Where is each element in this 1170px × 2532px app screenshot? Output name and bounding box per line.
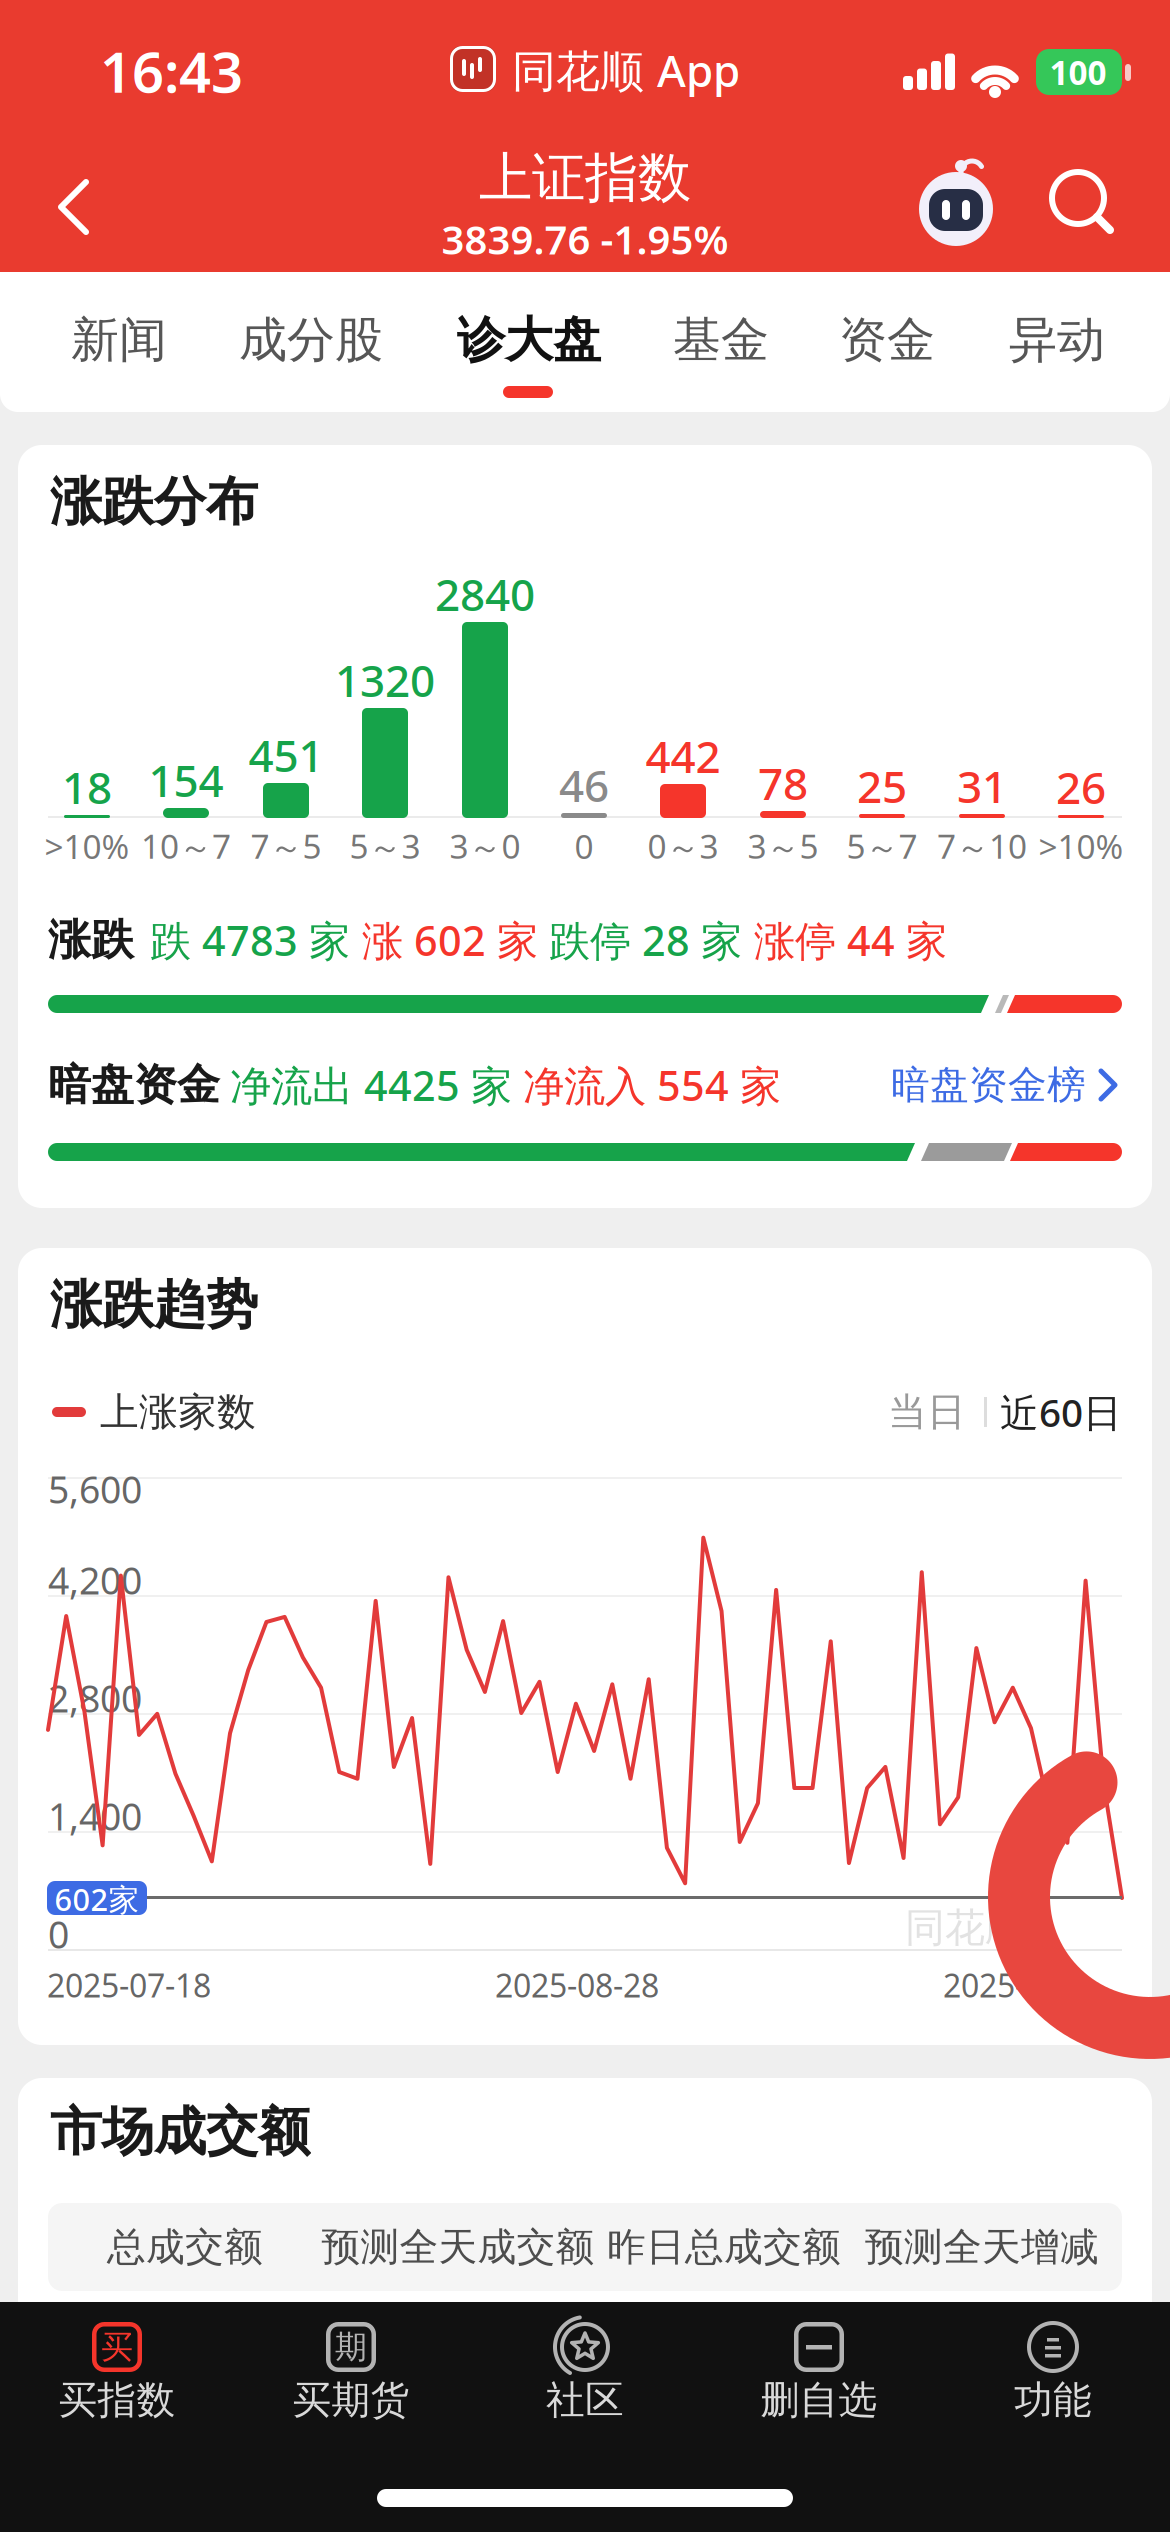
button[interactable]: 买 [0, 0, 200, 64]
staticText: 2025-08-28 [495, 1964, 659, 2006]
staticText: 删自选 [760, 2376, 877, 2424]
staticText: 442 [645, 727, 720, 785]
staticText: 暗盘资金榜 [891, 1061, 1086, 1109]
staticText: 涨 602 家 [362, 913, 538, 967]
staticText: 3～0 [449, 824, 520, 868]
staticText: 2840 [435, 565, 535, 623]
button[interactable] [0, 0, 1170, 2532]
staticText: 18 [62, 758, 112, 816]
staticText: 当日 [888, 1388, 966, 1436]
button[interactable] [0, 0, 1170, 2532]
staticText: 跌停 28 家 [549, 913, 742, 967]
button[interactable]: 资金 [0, 0, 240, 64]
button[interactable]: 期 [0, 0, 200, 64]
staticText: 资金 [839, 310, 935, 369]
staticText: 净流出 4425 家 [230, 1058, 512, 1112]
staticText: 31 [957, 757, 1007, 815]
staticText: 2025-07-18 [47, 1964, 211, 2006]
staticText: 预测全天增减 [865, 2223, 1099, 2271]
staticText: 涨停 44 家 [754, 913, 947, 967]
staticText: 功能 [1014, 2376, 1092, 2424]
staticText: 46 [559, 756, 609, 814]
staticText: 基金 [673, 310, 769, 369]
staticText: 暗盘资金 [48, 1059, 220, 1111]
button[interactable]: 成分股 [0, 0, 240, 64]
staticText: 期 [335, 2327, 367, 2367]
staticText: 26 [1056, 758, 1106, 816]
staticText: 买指数 [58, 2376, 175, 2424]
button[interactable]: 暗盘资金榜 [0, 0, 1170, 2532]
staticText: 7～5 [250, 824, 321, 868]
staticText: >10% [44, 824, 129, 868]
staticText: >10% [1038, 824, 1123, 868]
staticText: 净流入 554 家 [523, 1058, 781, 1112]
staticText: 10～7 [141, 824, 231, 868]
staticText: 0 [48, 1909, 69, 1959]
staticText: 新闻 [71, 310, 167, 369]
staticText: 7～10 [937, 824, 1027, 868]
staticText: 5,600 [48, 1464, 142, 1514]
staticText: 同花顺 [905, 1903, 1025, 1952]
button[interactable]: 新闻 [0, 0, 240, 64]
staticText: 异动 [1009, 310, 1105, 369]
staticText: 1320 [335, 651, 435, 709]
staticText: 近60日 [1000, 1386, 1122, 1438]
staticText: 1,400 [48, 1791, 142, 1841]
staticText: 3～5 [747, 824, 818, 868]
staticText: 市场成交额 [50, 2100, 310, 2164]
staticText: 78 [758, 754, 808, 812]
staticText: 买期货 [292, 2376, 409, 2424]
button[interactable]: 社区 [0, 0, 1170, 2532]
button[interactable]: 删自选 [0, 0, 200, 64]
staticText: 买 [101, 2327, 133, 2367]
staticText: 451 [248, 726, 323, 784]
staticText: 诊大盘 [457, 310, 601, 369]
staticText: 5～3 [349, 824, 420, 868]
staticText: 成分股 [239, 310, 383, 369]
staticText: 社区 [546, 2376, 624, 2424]
staticText: 0～3 [647, 824, 718, 868]
staticText: 上证指数 [479, 145, 691, 211]
staticText: 154 [148, 751, 223, 809]
staticText: 2,800 [48, 1673, 142, 1723]
staticText: 100 [1049, 50, 1106, 94]
staticText: 涨跌分布 [50, 470, 258, 534]
button[interactable]: 基金 [0, 0, 240, 64]
staticText: 16:43 [100, 34, 243, 108]
button[interactable] [0, 0, 1170, 2532]
staticText: 总成交额 [107, 2223, 263, 2271]
staticText: 0 [574, 824, 593, 868]
staticText: 4,200 [48, 1555, 142, 1605]
button[interactable]: 诊大盘 [0, 0, 240, 64]
staticText: 涨跌趋势 [50, 1273, 258, 1337]
staticText: 2025-1 [943, 1964, 1043, 2006]
staticText: 同花顺 App [512, 41, 740, 99]
staticText: 涨跌 [48, 914, 134, 966]
button[interactable]: 功能 [0, 0, 1170, 2532]
button[interactable]: 当日 [0, 0, 400, 64]
staticText: 上涨家数 [100, 1388, 256, 1436]
staticText: 昨日总成交额 [607, 2223, 841, 2271]
button[interactable]: 异动 [0, 0, 240, 64]
staticText: 602家 [54, 1879, 139, 1919]
staticText: 3839.76 -1.95% [441, 212, 728, 265]
staticText: 5～7 [846, 824, 917, 868]
staticText: 预测全天成交额 [321, 2223, 594, 2271]
staticText: 25 [857, 757, 907, 815]
staticText: 跌 4783 家 [150, 913, 350, 967]
